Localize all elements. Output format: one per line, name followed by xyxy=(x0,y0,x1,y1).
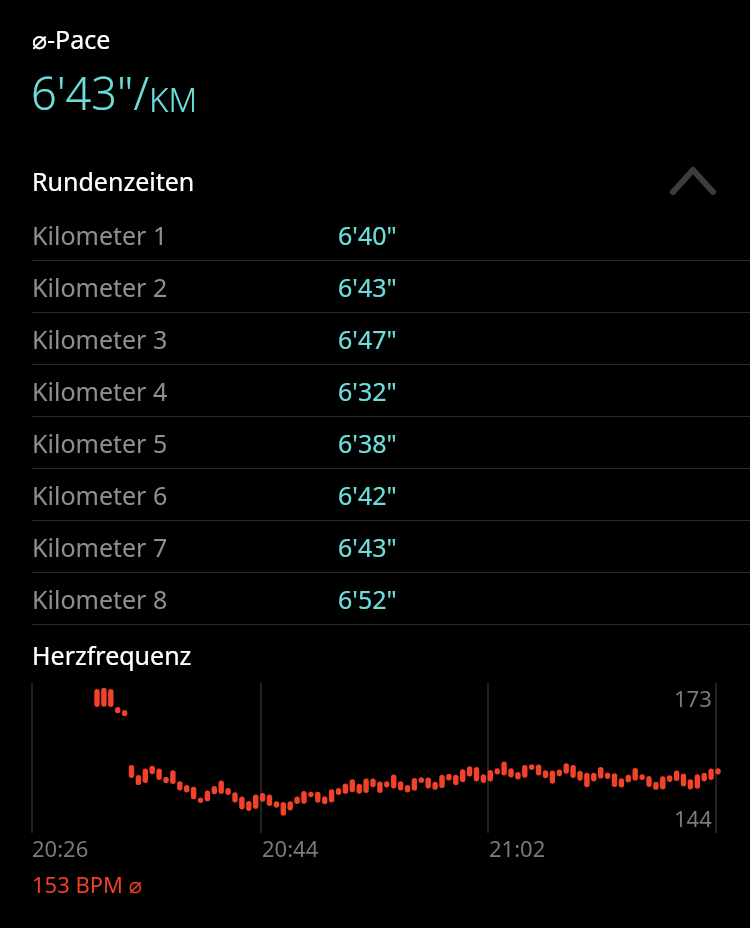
button[interactable]: Kilometer 2 xyxy=(0,261,750,312)
staticText: 20:26 xyxy=(32,833,89,863)
staticText: 6'38" xyxy=(338,426,397,460)
staticText: 6'52" xyxy=(338,582,397,616)
staticText: 6'47" xyxy=(338,322,397,356)
staticText: Herzfrequenz xyxy=(32,638,192,672)
button[interactable]: Kilometer 5 xyxy=(0,417,750,468)
staticText: 20:44 xyxy=(262,833,319,863)
staticText: Kilometer 6 xyxy=(32,478,168,512)
staticText: 6'40" xyxy=(338,218,397,252)
button[interactable]: Kilometer 8 xyxy=(0,573,750,624)
staticText: Kilometer 3 xyxy=(32,322,168,356)
button[interactable]: Kilometer 4 xyxy=(0,365,750,416)
staticText: Rundenzeiten xyxy=(32,164,195,198)
staticText: ⌀-Pace xyxy=(32,22,111,56)
staticText: 6'43" xyxy=(338,270,397,304)
staticText: 6'43" xyxy=(338,530,397,564)
staticText: KM xyxy=(149,77,198,122)
button[interactable]: Kilometer 6 xyxy=(0,469,750,520)
staticText: 153 BPM ⌀ xyxy=(32,869,143,899)
button[interactable]: Rundenzeiten xyxy=(0,153,750,209)
staticText: Kilometer 2 xyxy=(32,270,168,304)
other: Collapse lap times xyxy=(673,167,713,195)
staticText: 6'42" xyxy=(338,478,397,512)
staticText: 6'32" xyxy=(338,374,397,408)
button[interactable]: Kilometer 1 xyxy=(0,209,750,260)
staticText: 6'43"/ xyxy=(31,62,149,123)
staticText: 21:02 xyxy=(489,833,546,863)
button[interactable]: Kilometer 7 xyxy=(0,521,750,572)
staticText: Kilometer 1 xyxy=(32,218,168,252)
button[interactable]: Kilometer 3 xyxy=(0,313,750,364)
staticText: Kilometer 8 xyxy=(32,582,168,616)
staticText: Kilometer 7 xyxy=(32,530,168,564)
staticText: 144 xyxy=(674,803,712,833)
staticText: 173 xyxy=(674,683,712,713)
staticText: Kilometer 4 xyxy=(32,374,168,408)
staticText: Kilometer 5 xyxy=(32,426,168,460)
